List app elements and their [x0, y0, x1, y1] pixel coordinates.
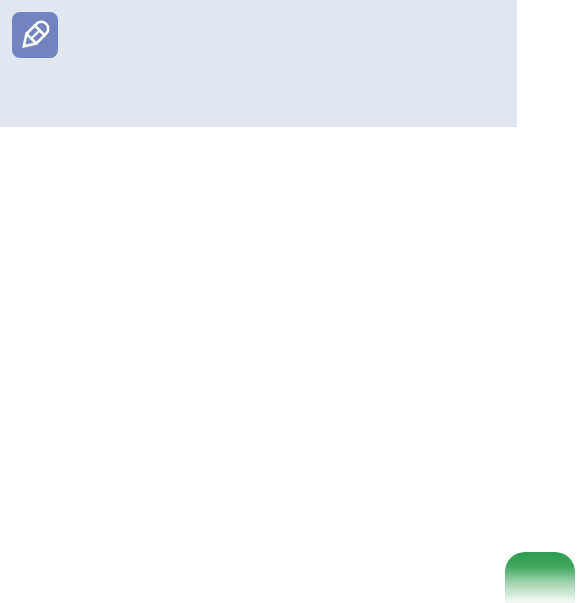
button[interactable]: Compose	[505, 552, 575, 603]
button[interactable]: Edit	[12, 12, 58, 58]
